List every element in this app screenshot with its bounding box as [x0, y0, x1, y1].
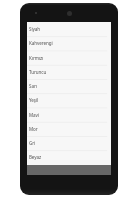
staticText: Kırmızı	[29, 55, 44, 61]
button[interactable]: Mavi	[27, 108, 111, 122]
staticText: Mavi	[29, 112, 39, 118]
staticText: Siyah	[29, 26, 41, 32]
staticText: Sarı	[29, 83, 37, 89]
button[interactable]: Sarı	[27, 79, 111, 93]
staticText: Kahverengi	[29, 40, 53, 46]
button[interactable]: Mor	[27, 122, 111, 136]
staticText: Beyaz	[29, 154, 42, 160]
staticText: Yeşil	[29, 97, 39, 103]
button[interactable]: Kırmızı	[27, 51, 111, 65]
button[interactable]: Beyaz	[27, 150, 111, 164]
staticText: Turuncu	[29, 69, 47, 75]
button[interactable]: Turuncu	[27, 65, 111, 79]
staticText: Gri	[29, 140, 36, 146]
button[interactable]: Gri	[27, 136, 111, 150]
button[interactable]: Yeşil	[27, 93, 111, 107]
button[interactable]: Siyah	[27, 22, 111, 36]
staticText: Mor	[29, 126, 38, 132]
button[interactable]: Kahverengi	[27, 36, 111, 50]
